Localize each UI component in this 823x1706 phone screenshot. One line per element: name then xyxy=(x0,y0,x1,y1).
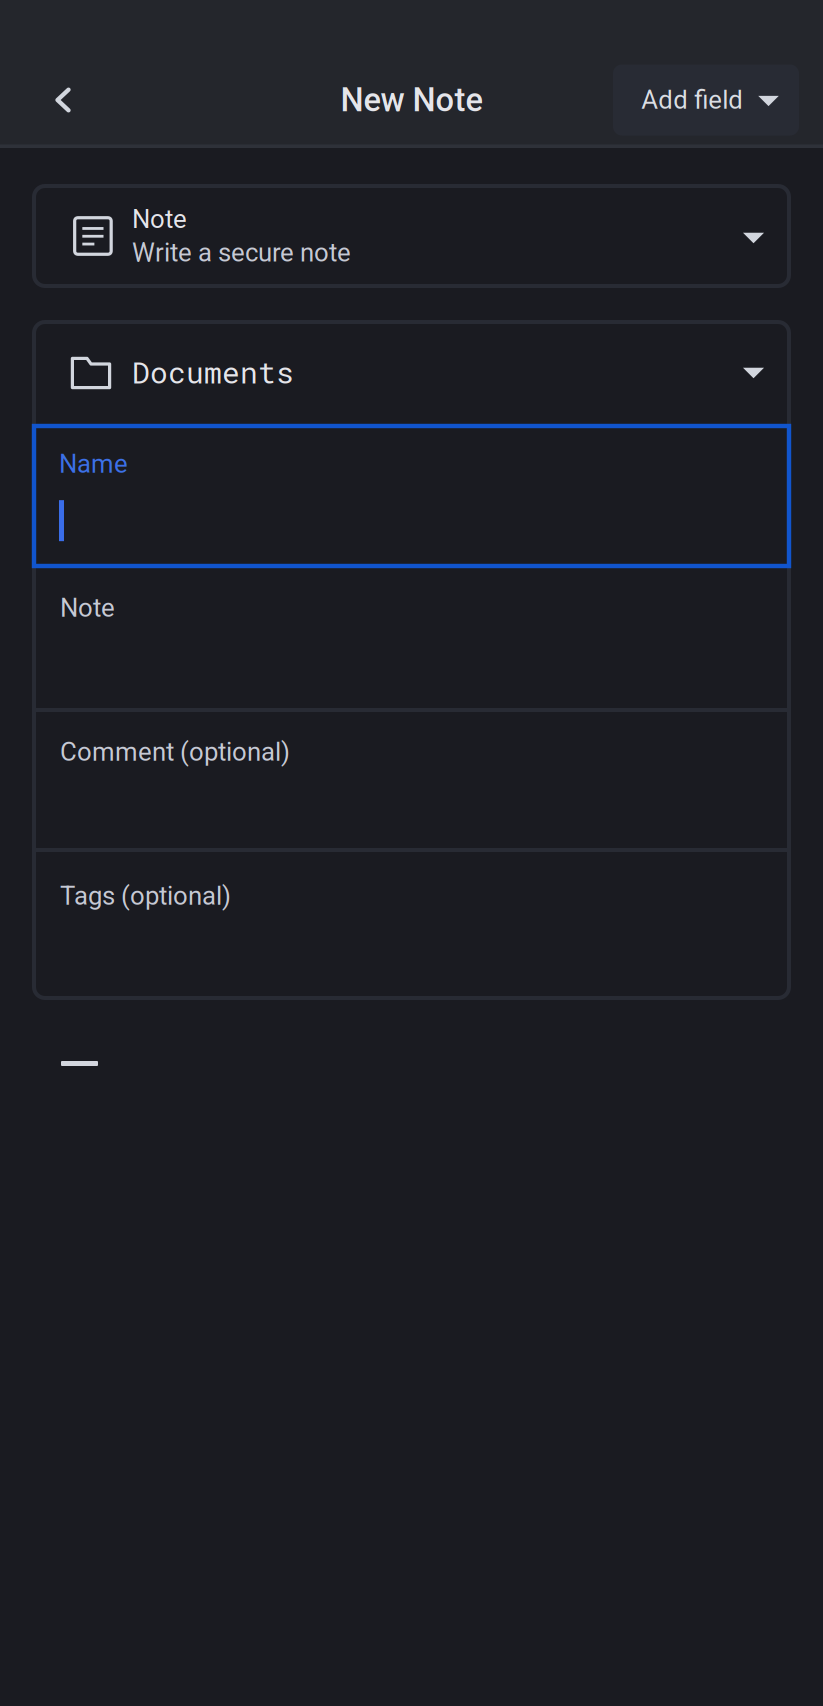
button[interactable]: Tags (optional) xyxy=(32,852,791,1000)
button[interactable]: Back xyxy=(32,69,94,131)
staticText: Write a secure note xyxy=(132,238,351,268)
button[interactable]: Add field xyxy=(613,64,799,135)
staticText: Tags (optional) xyxy=(60,881,231,911)
button[interactable]: Name xyxy=(32,426,791,566)
staticText: Note xyxy=(60,593,115,623)
staticText: Name xyxy=(59,449,128,479)
staticText: Add field xyxy=(641,85,743,115)
staticText: New Note xyxy=(340,81,482,119)
button[interactable]: Note xyxy=(32,566,791,708)
staticText: Comment (optional) xyxy=(60,737,290,767)
button[interactable]: Note xyxy=(32,184,791,288)
button[interactable]: Comment (optional) xyxy=(32,712,791,848)
staticText: Documents xyxy=(132,352,294,391)
staticText: Note xyxy=(132,204,187,234)
button[interactable]: Documents xyxy=(32,320,791,426)
